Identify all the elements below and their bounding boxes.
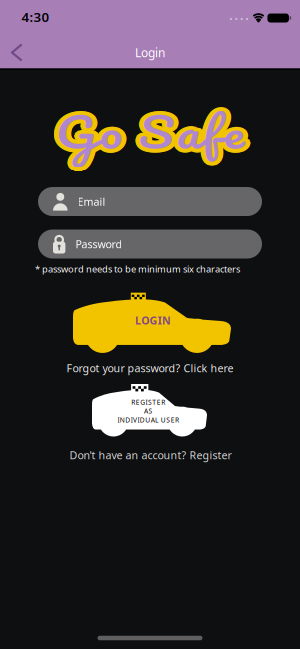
staticText: Go Safe	[55, 92, 244, 181]
staticText: Go Safe	[55, 87, 244, 176]
staticText: Password	[75, 237, 122, 251]
staticText: Go Safe	[53, 83, 242, 172]
staticText: Login	[135, 45, 165, 61]
staticText: LOGIN	[135, 313, 171, 327]
staticText: Go Safe	[58, 92, 247, 181]
button[interactable]: Back	[4, 37, 29, 68]
staticText: Go Safe	[55, 82, 244, 171]
staticText: Go Safe	[60, 90, 249, 179]
staticText: Go Safe	[50, 87, 239, 176]
button[interactable]: REGISTER AS INDIVIDUAL USER	[92, 384, 207, 436]
button[interactable]: Password	[38, 229, 262, 258]
staticText: Go Safe	[51, 90, 240, 179]
staticText: * password needs to be minimum six chara…	[35, 263, 240, 275]
button[interactable]: LOGIN	[73, 293, 231, 353]
staticText: Go Safe	[53, 87, 242, 176]
staticText: Go Safe	[57, 85, 246, 174]
staticText: Go Safe	[54, 85, 243, 174]
staticText: Go Safe	[58, 87, 247, 176]
staticText: Email	[78, 194, 106, 209]
staticText: REGISTER AS INDIVIDUAL USER	[117, 398, 179, 424]
staticText: Go Safe	[60, 87, 249, 176]
button[interactable]: Forgot your password? Click here	[66, 358, 233, 378]
staticText: Go Safe	[58, 83, 247, 172]
staticText: Don't have an account? Register	[69, 448, 231, 462]
staticText: Go Safe	[60, 85, 249, 174]
staticText: Forgot your password? Click here	[66, 361, 233, 375]
staticText: Go Safe	[54, 90, 243, 179]
staticText: Go Safe	[53, 92, 242, 181]
button[interactable]: Don't have an account? Register	[69, 445, 231, 465]
button[interactable]: Email	[38, 187, 262, 216]
staticText: 4:30	[21, 8, 49, 26]
staticText: Go Safe	[57, 90, 246, 179]
staticText: Go Safe	[51, 85, 240, 174]
